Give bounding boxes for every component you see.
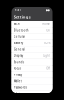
staticText: Focus [14, 67, 21, 70]
staticText: Wi-Fi [14, 22, 20, 26]
button[interactable]: Wallet [11, 78, 52, 84]
staticText: Settings [14, 14, 31, 20]
staticText: 9:41 [14, 8, 21, 12]
staticText: Battery [14, 41, 23, 45]
staticText: Wallet [14, 79, 22, 83]
staticText: Light [43, 54, 50, 57]
staticText: ●● [45, 8, 49, 11]
button[interactable]: Focus [11, 65, 52, 71]
button[interactable]: Safari [11, 91, 52, 97]
staticText: Home [42, 22, 50, 26]
button[interactable]: Wi-Fi [11, 21, 52, 27]
staticText: Cellular [14, 35, 25, 38]
button[interactable]: Privacy [11, 72, 52, 78]
staticText: Bluetooth [14, 29, 29, 32]
staticText: 82% [44, 41, 50, 45]
button[interactable]: Bluetooth [11, 27, 52, 33]
staticText: Passwords [14, 86, 27, 89]
button[interactable]: Passwords [11, 84, 52, 90]
staticText: Sounds [14, 60, 24, 64]
button[interactable]: Battery [11, 40, 52, 46]
staticText: Privacy [14, 73, 22, 76]
staticText: On [46, 29, 50, 32]
button[interactable]: General [11, 46, 52, 52]
button[interactable]: Display [11, 53, 52, 59]
button[interactable]: Sounds [11, 59, 52, 65]
staticText: Off [46, 67, 50, 70]
staticText: Safari [14, 92, 20, 96]
button[interactable]: Cellular [11, 34, 52, 40]
staticText: General [14, 48, 25, 51]
staticText: Display [14, 54, 23, 57]
